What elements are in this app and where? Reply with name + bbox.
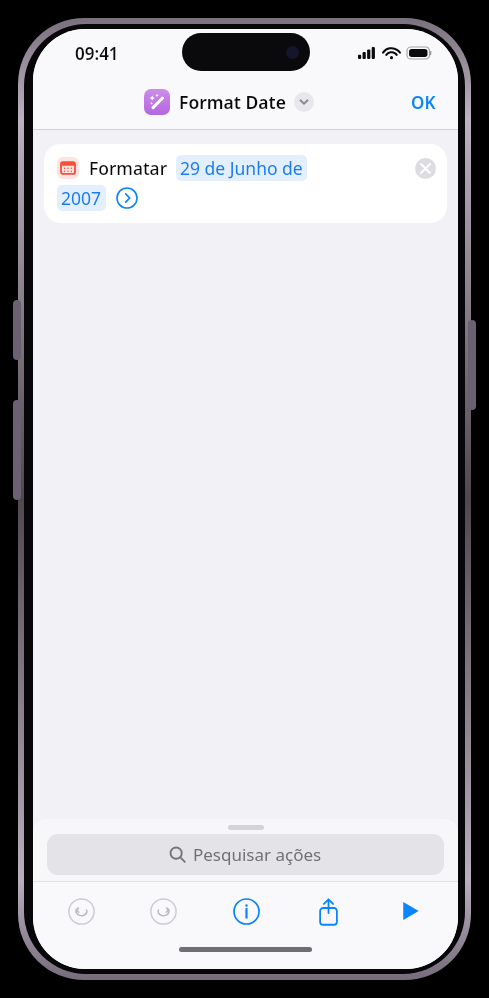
- button[interactable]: Format Date: [144, 89, 314, 115]
- staticText: 09:41: [75, 42, 119, 65]
- staticText: 29 de Junho de: [180, 156, 303, 180]
- staticText: Formatar: [89, 156, 168, 180]
- button[interactable]: Reproduzir: [388, 889, 432, 933]
- button[interactable]: Remover ação: [415, 158, 436, 179]
- button[interactable]: Mais opções: [116, 187, 138, 209]
- staticText: Pesquisar ações: [193, 843, 322, 866]
- button[interactable]: OK: [407, 85, 440, 120]
- staticText: Format Date: [179, 90, 286, 114]
- button[interactable]: Formatar: [44, 144, 447, 223]
- button[interactable]: Informações: [224, 889, 268, 933]
- button[interactable]: Pesquisar ações: [47, 834, 444, 875]
- staticText: OK: [411, 91, 436, 114]
- button[interactable]: Desfazer: [59, 889, 103, 933]
- button[interactable]: Partilhar: [306, 889, 350, 933]
- button[interactable]: Refazer: [141, 889, 185, 933]
- staticText: 2007: [61, 186, 102, 210]
